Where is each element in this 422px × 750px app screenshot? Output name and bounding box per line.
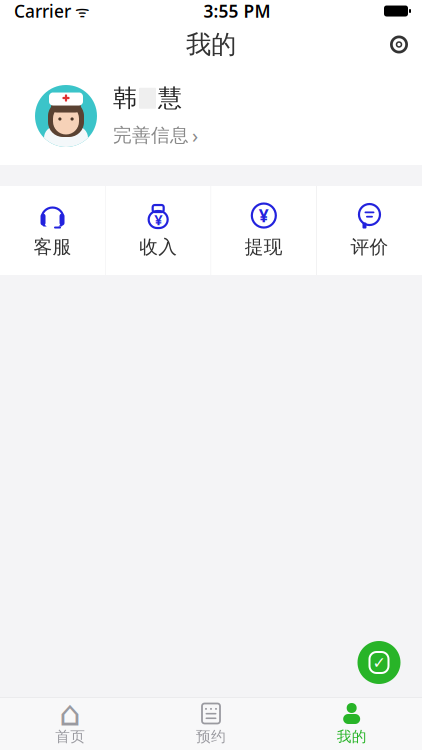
- staticText: ᯤ: [71, 0, 90, 22]
- staticText: 韩: [113, 83, 137, 113]
- button[interactable]: ¥: [211, 186, 316, 275]
- staticText: 提现: [245, 235, 283, 258]
- staticText: 收入: [139, 235, 177, 258]
- staticText: 慧: [158, 83, 182, 113]
- staticText: 我的: [186, 29, 236, 60]
- staticText: 预约: [196, 727, 226, 745]
- button[interactable]: ¥: [106, 186, 211, 275]
- staticText: ⌂: [59, 694, 81, 733]
- button[interactable]: 设置: [376, 23, 422, 65]
- staticText: 客服: [33, 235, 71, 258]
- staticText: ¥: [154, 210, 162, 229]
- staticText: Carrier: [14, 0, 71, 22]
- staticText: 评价: [350, 235, 388, 258]
- staticText: ✓: [372, 654, 385, 672]
- staticText: ¥: [259, 204, 269, 227]
- staticText: 首页: [55, 727, 85, 745]
- button[interactable]: 我的: [281, 699, 422, 748]
- staticText: 完善信息: [113, 124, 189, 147]
- staticText: 我的: [337, 727, 367, 745]
- button[interactable]: 安全认证: [350, 633, 408, 691]
- staticText: ›: [192, 122, 198, 149]
- button[interactable]: 客服: [0, 186, 105, 275]
- staticText: 3:55 PM: [203, 0, 270, 22]
- button[interactable]: ⌂: [0, 699, 141, 748]
- button[interactable]: 韩: [0, 67, 422, 165]
- button[interactable]: 预约: [141, 699, 281, 748]
- button[interactable]: 评价: [317, 186, 422, 275]
